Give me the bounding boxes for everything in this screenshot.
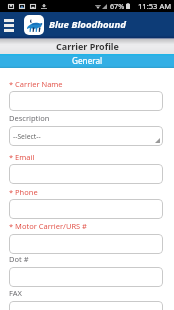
staticText: * Email (9, 152, 35, 162)
staticText: FAX (9, 288, 22, 298)
staticText: * Carrier Name (9, 79, 63, 89)
button[interactable] (9, 234, 163, 254)
button[interactable] (9, 199, 163, 219)
staticText: Carrier Profile (56, 40, 119, 52)
button[interactable]: --Select-- (9, 126, 163, 146)
staticText: --Select-- (13, 132, 41, 141)
staticText: * Phone (9, 187, 38, 197)
staticText: * Motor Carrier/URS # (9, 221, 87, 231)
staticText: 11:53 AM (138, 1, 172, 11)
button[interactable] (9, 301, 163, 310)
staticText: Dot # (9, 254, 29, 264)
staticText: Blue Bloodhound (49, 18, 126, 31)
staticText: General (72, 55, 103, 66)
button[interactable] (9, 164, 163, 184)
button[interactable] (9, 267, 163, 287)
button[interactable]: General (0, 54, 174, 68)
button[interactable] (9, 91, 163, 111)
staticText: Description (9, 113, 50, 123)
button[interactable]: Open navigation menu (1, 17, 17, 33)
staticText: 67% (110, 1, 125, 11)
